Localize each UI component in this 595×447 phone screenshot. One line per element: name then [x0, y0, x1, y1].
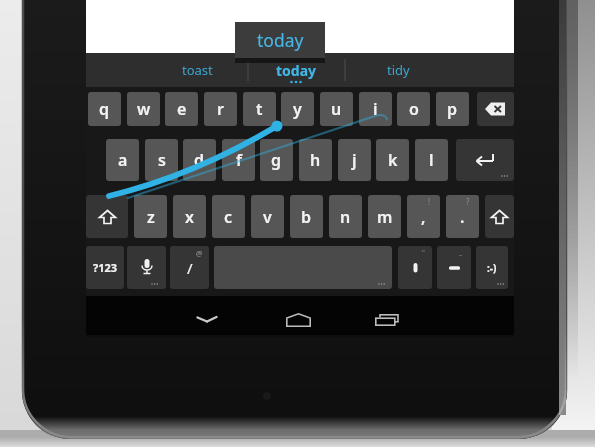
button[interactable]: [456, 139, 514, 181]
staticText: x: [185, 206, 194, 228]
button[interactable]: q: [88, 92, 121, 126]
button[interactable]: [437, 246, 471, 289]
button[interactable]: /: [170, 246, 209, 289]
button[interactable]: toast: [152, 53, 242, 87]
staticText: u: [331, 98, 342, 120]
staticText: n: [340, 206, 351, 228]
staticText: toast: [182, 61, 213, 79]
staticText: o: [409, 98, 419, 120]
staticText: .: [460, 206, 465, 228]
staticText: j: [352, 149, 357, 171]
button[interactable]: z: [134, 195, 167, 238]
staticText: today: [257, 28, 304, 52]
button[interactable]: o: [397, 92, 430, 126]
staticText: ,: [421, 206, 426, 228]
button[interactable]: today: [251, 53, 341, 87]
staticText: tidy: [387, 61, 410, 79]
staticText: today: [276, 61, 317, 80]
button[interactable]: u: [320, 92, 353, 126]
button[interactable]: [86, 195, 128, 238]
button[interactable]: e: [165, 92, 198, 126]
staticText: _: [459, 248, 463, 258]
button[interactable]: h: [299, 139, 332, 181]
staticText: f: [236, 149, 242, 171]
staticText: ?123: [93, 260, 118, 275]
staticText: /: [187, 258, 193, 278]
button[interactable]: ,: [407, 195, 440, 238]
staticText: w: [137, 98, 151, 120]
button[interactable]: [86, 0, 514, 53]
staticText: h: [310, 149, 321, 171]
button[interactable]: [187, 305, 227, 335]
button[interactable]: d: [183, 139, 216, 181]
staticText: t: [256, 98, 263, 120]
button[interactable]: k: [376, 139, 409, 181]
staticText: m: [377, 206, 393, 228]
staticText: d: [194, 149, 205, 171]
staticText: :-): [487, 261, 497, 275]
button[interactable]: r: [204, 92, 237, 126]
staticText: r: [217, 98, 224, 120]
button[interactable]: a: [106, 139, 139, 181]
staticText: q: [99, 98, 110, 120]
button[interactable]: [398, 246, 432, 289]
button[interactable]: [278, 305, 318, 335]
button[interactable]: w: [127, 92, 160, 126]
staticText: p: [447, 98, 458, 120]
button[interactable]: m: [368, 195, 401, 238]
button[interactable]: i: [359, 92, 392, 126]
button[interactable]: [127, 246, 166, 289]
button[interactable]: c: [212, 195, 245, 238]
button[interactable]: s: [145, 139, 178, 181]
staticText: l: [429, 149, 434, 171]
button[interactable]: today: [235, 22, 325, 63]
button[interactable]: b: [290, 195, 323, 238]
button[interactable]: p: [436, 92, 469, 126]
staticText: !: [428, 196, 431, 206]
button[interactable]: y: [281, 92, 314, 126]
button[interactable]: :-): [476, 246, 508, 289]
button[interactable]: [485, 195, 514, 238]
staticText: ": [422, 248, 425, 258]
button[interactable]: l: [415, 139, 448, 181]
button[interactable]: f: [222, 139, 255, 181]
staticText: ?: [466, 196, 470, 206]
staticText: a: [118, 149, 128, 171]
staticText: z: [147, 206, 155, 228]
button[interactable]: x: [173, 195, 206, 238]
staticText: e: [177, 98, 187, 120]
button[interactable]: n: [329, 195, 362, 238]
staticText: @: [196, 249, 203, 259]
button[interactable]: g: [260, 139, 293, 181]
staticText: v: [263, 206, 272, 228]
button[interactable]: tidy: [353, 53, 443, 87]
button[interactable]: j: [338, 139, 371, 181]
staticText: y: [293, 98, 302, 120]
button[interactable]: .: [446, 195, 479, 238]
button[interactable]: v: [251, 195, 284, 238]
button[interactable]: t: [243, 92, 276, 126]
staticText: c: [224, 206, 233, 228]
button[interactable]: ?123: [86, 246, 124, 289]
button[interactable]: [367, 305, 407, 335]
staticText: g: [271, 149, 282, 171]
staticText: s: [158, 149, 166, 171]
staticText: i: [373, 98, 378, 120]
staticText: b: [301, 206, 312, 228]
button[interactable]: [477, 92, 514, 126]
staticText: k: [388, 149, 398, 171]
